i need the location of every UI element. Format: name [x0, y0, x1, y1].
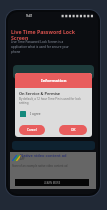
staticText: I agree	[30, 112, 41, 116]
staticText: Live Time Password Lock Screen	[11, 28, 79, 42]
button[interactable]: LEARN MORE	[15, 179, 89, 186]
button[interactable]: Cancel	[19, 125, 45, 135]
staticText: AFP	[20, 157, 25, 161]
button[interactable]: I agree	[20, 111, 41, 117]
staticText: LEARN MORE	[44, 181, 61, 185]
staticText: Information	[41, 78, 67, 84]
staticText: Store of an example native video content…	[12, 164, 68, 168]
staticText: Cancel	[27, 128, 37, 132]
button[interactable]: OK	[59, 125, 87, 135]
staticText: OK	[71, 128, 76, 132]
staticText: Native video content ad	[20, 153, 67, 158]
staticText: Live Time Password Lock Screen is a appl…	[11, 40, 77, 54]
staticText: By default, a 12 hour Time Pin is used f…	[19, 97, 89, 105]
staticText: On Service & Permise	[19, 91, 61, 96]
button[interactable]: Native video content ad	[10, 152, 96, 189]
staticText: 9:41	[26, 14, 33, 18]
